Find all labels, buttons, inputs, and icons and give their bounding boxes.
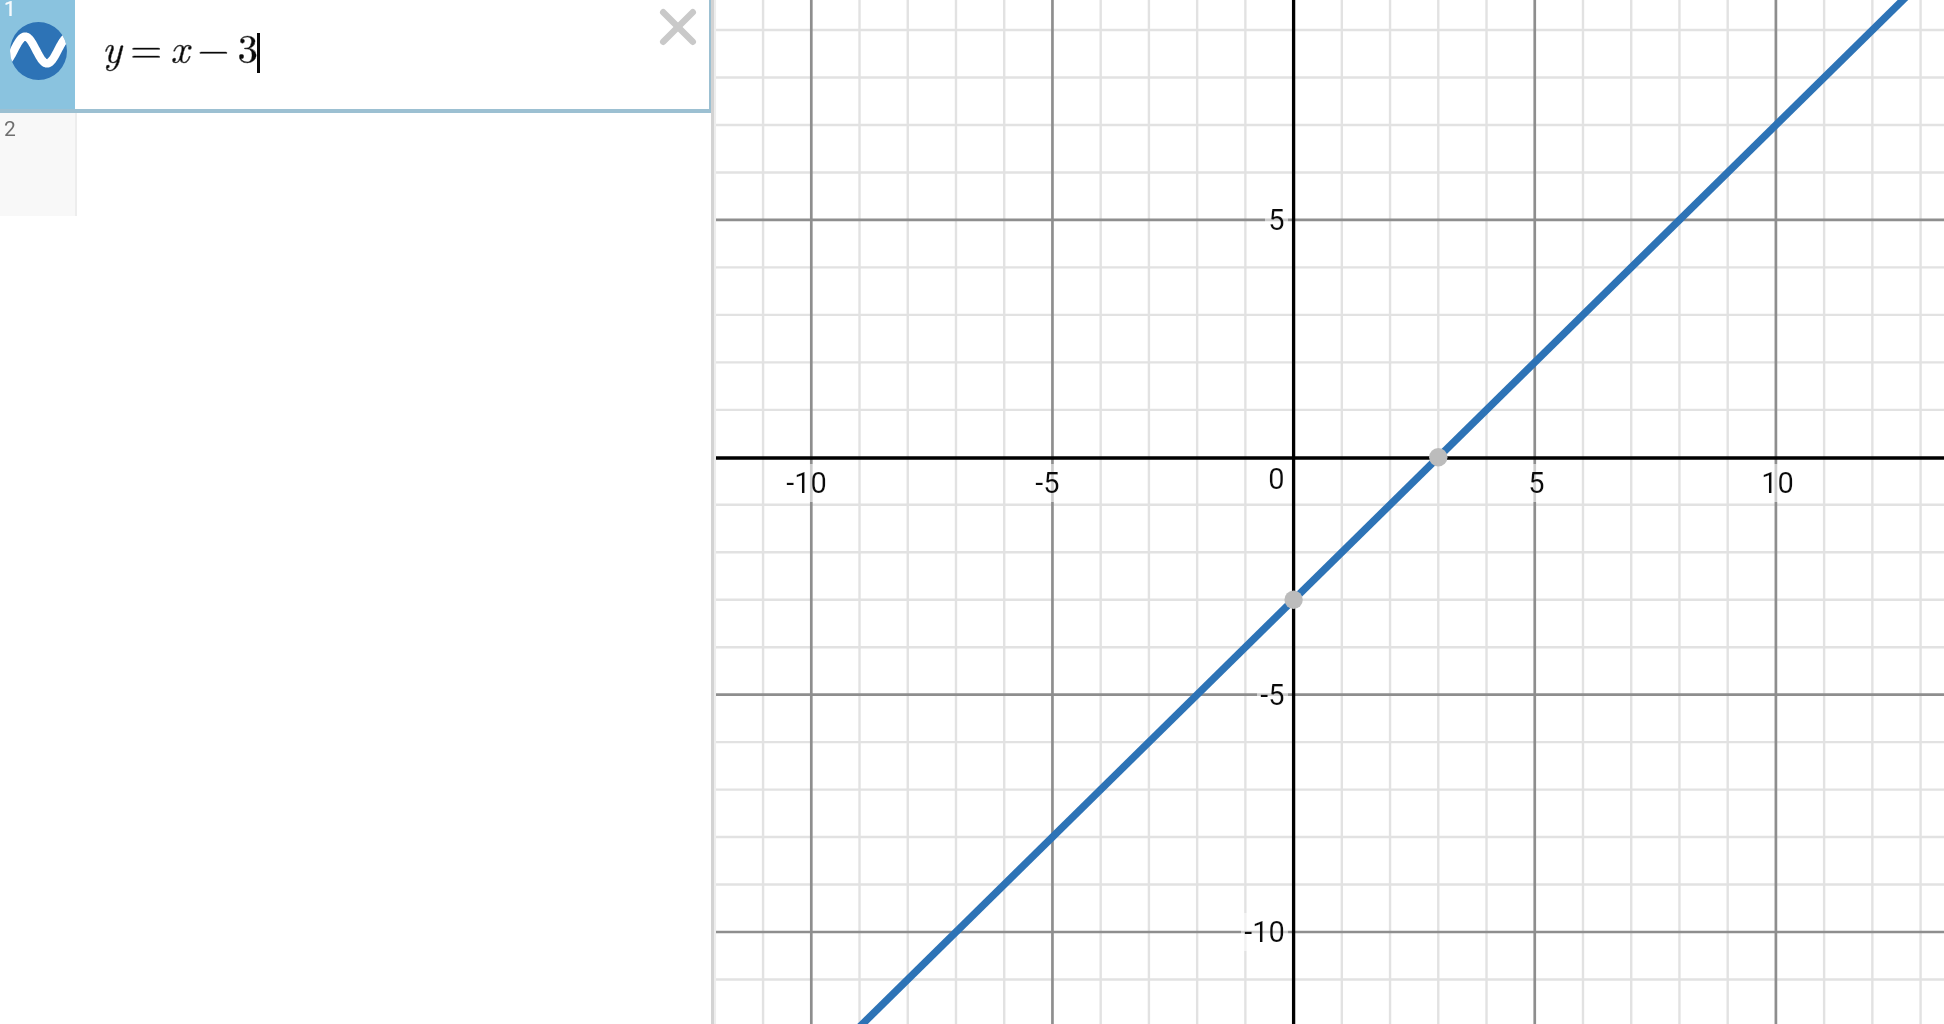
button[interactable]: Toggle graph visibility: [10, 22, 67, 80]
staticText: y = x − 3: [102, 17, 259, 75]
staticText: 10: [1761, 466, 1794, 500]
button[interactable]: 1: [0, 0, 711, 113]
staticText: 2: [4, 117, 16, 142]
staticText: -10: [1244, 915, 1285, 949]
staticText: -10: [786, 466, 827, 500]
staticText: 1: [4, 0, 16, 22]
staticText: 5: [1528, 466, 1545, 500]
staticText: -5: [1035, 466, 1060, 500]
button[interactable]: Delete expression: [650, 0, 706, 55]
staticText: -5: [1260, 678, 1285, 712]
staticText: y = x − 3: [102, 17, 259, 75]
staticText: 0: [1268, 462, 1285, 496]
button[interactable]: 2: [0, 113, 711, 216]
staticText: 5: [1268, 203, 1285, 237]
